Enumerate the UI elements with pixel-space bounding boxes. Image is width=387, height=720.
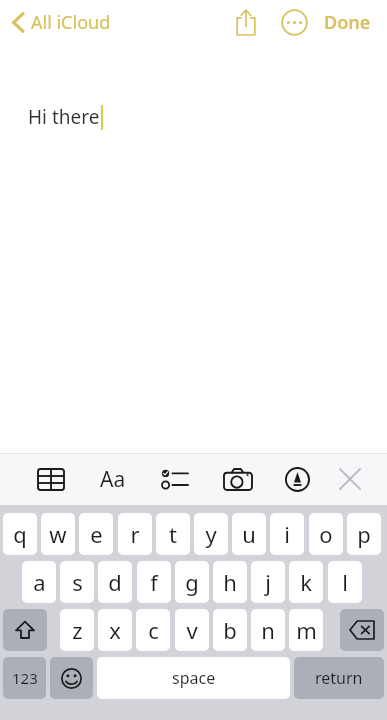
button[interactable]: q — [3, 513, 37, 555]
staticText: v — [186, 615, 198, 645]
button[interactable]: w — [41, 513, 75, 555]
button[interactable]: space — [97, 657, 290, 699]
staticText: b — [223, 615, 237, 645]
button[interactable]: o — [309, 513, 343, 555]
button[interactable]: Done — [318, 4, 377, 41]
button[interactable]: i — [270, 513, 304, 555]
button[interactable]: s — [60, 561, 94, 603]
staticText: k — [300, 567, 312, 597]
button[interactable]: Emoji — [50, 657, 93, 699]
button[interactable]: z — [60, 609, 94, 651]
button[interactable]: a — [22, 561, 56, 603]
button[interactable]: v — [175, 609, 209, 651]
button[interactable]: return — [294, 657, 384, 699]
button[interactable]: 123 — [3, 657, 46, 699]
staticText: n — [261, 615, 275, 645]
button[interactable]: Close — [328, 457, 372, 501]
button[interactable]: b — [213, 609, 247, 651]
staticText: o — [319, 519, 333, 549]
button[interactable]: Camera — [216, 457, 260, 501]
button[interactable]: j — [251, 561, 285, 603]
staticText: space — [172, 667, 216, 689]
staticText: y — [205, 519, 217, 549]
button[interactable]: d — [98, 561, 132, 603]
button[interactable]: More options — [274, 2, 314, 42]
button[interactable]: u — [232, 513, 266, 555]
button[interactable]: l — [328, 561, 362, 603]
staticText: c — [148, 615, 159, 645]
staticText: m — [296, 615, 317, 645]
staticText: q — [13, 519, 27, 549]
staticText: x — [109, 615, 121, 645]
staticText: p — [357, 519, 371, 549]
staticText: i — [284, 519, 290, 549]
staticText: w — [49, 519, 67, 549]
staticText: Aa — [100, 465, 126, 494]
button[interactable]: x — [98, 609, 132, 651]
button[interactable]: g — [175, 561, 209, 603]
button[interactable]: m — [289, 609, 323, 651]
button[interactable]: Checklist — [153, 457, 197, 501]
staticText: All iCloud — [31, 10, 111, 35]
button[interactable]: f — [137, 561, 171, 603]
staticText: d — [108, 567, 122, 597]
staticText: g — [185, 567, 199, 597]
staticText: r — [130, 519, 140, 549]
staticText: return — [315, 667, 363, 689]
staticText: u — [242, 519, 256, 549]
button[interactable]: Shift — [3, 609, 47, 651]
button[interactable]: Markup — [275, 457, 319, 501]
staticText: z — [72, 615, 83, 645]
button[interactable]: Backspace — [340, 609, 384, 651]
button[interactable]: k — [289, 561, 323, 603]
button[interactable]: t — [156, 513, 190, 555]
button[interactable]: y — [194, 513, 228, 555]
staticText: Done — [324, 10, 371, 35]
button[interactable]: Table — [29, 457, 73, 501]
staticText: l — [342, 567, 348, 597]
staticText: e — [90, 519, 103, 549]
staticText: j — [265, 567, 271, 597]
button[interactable]: r — [118, 513, 152, 555]
staticText: a — [33, 567, 46, 597]
button[interactable]: n — [251, 609, 285, 651]
button[interactable]: e — [79, 513, 113, 555]
staticText: 123 — [12, 668, 38, 688]
staticText: t — [169, 519, 177, 549]
button[interactable]: Format — [91, 457, 135, 501]
button[interactable]: All iCloud — [8, 6, 115, 39]
button[interactable]: h — [213, 561, 247, 603]
button[interactable]: Share — [226, 2, 266, 42]
staticText: s — [72, 567, 83, 597]
staticText: Hi there — [28, 104, 100, 130]
button[interactable]: c — [136, 609, 170, 651]
button[interactable]: p — [347, 513, 381, 555]
staticText: f — [150, 567, 158, 597]
staticText: h — [223, 567, 237, 597]
